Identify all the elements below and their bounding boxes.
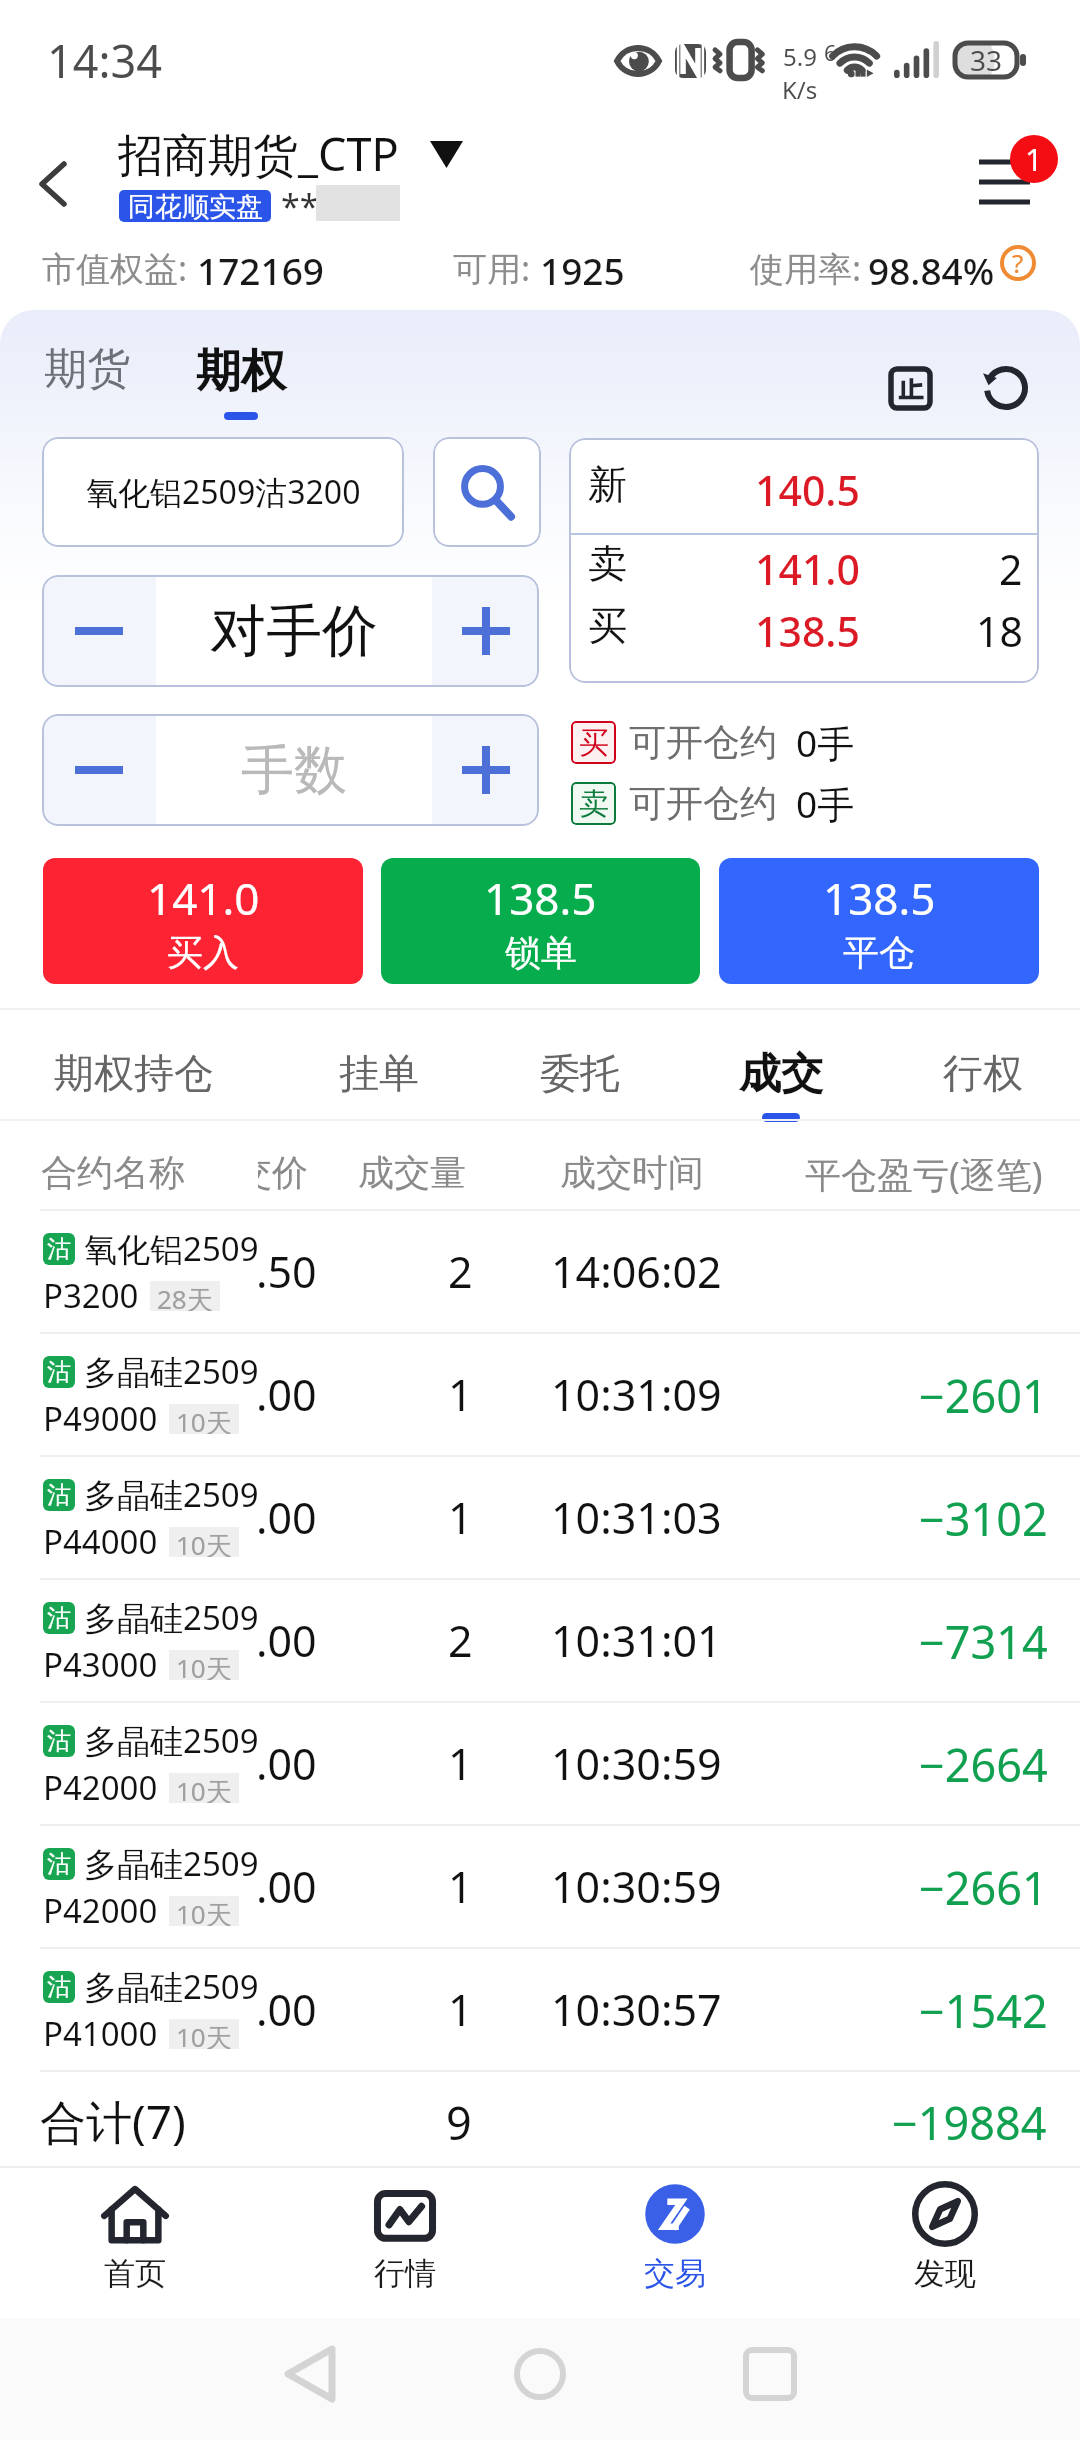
- staticText: 0手: [796, 717, 855, 768]
- staticText: 10:31:03: [551, 1488, 722, 1547]
- staticText: 10:30:57: [551, 1980, 722, 2039]
- staticText: .50: [256, 1242, 317, 1301]
- staticText: 140.5: [755, 462, 860, 518]
- staticText: 沽: [47, 1972, 71, 2002]
- button[interactable]: 期货: [44, 342, 130, 396]
- button[interactable]: Decrease: [42, 714, 156, 826]
- staticText: 沽: [47, 1357, 71, 1387]
- staticText: .00: [256, 1365, 317, 1424]
- button[interactable]: 成交: [719, 1022, 843, 1132]
- staticText: −19884: [892, 2092, 1047, 2153]
- button[interactable]: 138.5: [719, 858, 1039, 984]
- button[interactable]: 141.0: [43, 858, 363, 984]
- button[interactable]: Search: [433, 437, 541, 547]
- staticText: .00: [256, 1734, 317, 1793]
- staticText: 98.84%: [868, 245, 995, 291]
- button[interactable]: 138.5: [381, 858, 700, 984]
- staticText: 1: [448, 1980, 473, 2039]
- staticText: 挂单: [339, 1048, 419, 1098]
- staticText: .00: [256, 1857, 317, 1916]
- staticText: 138.5: [484, 868, 597, 928]
- staticText: .00: [256, 1980, 317, 2039]
- button[interactable]: 期权持仓: [34, 1022, 234, 1132]
- staticText: 10:31:01: [551, 1611, 722, 1670]
- staticText: 1: [448, 1365, 473, 1424]
- button[interactable]: Recents: [730, 2334, 810, 2414]
- button[interactable]: .00: [0, 1334, 1080, 1455]
- staticText: 9: [446, 2092, 472, 2153]
- staticText: .00: [256, 1611, 317, 1670]
- staticText: 1925: [540, 245, 625, 291]
- staticText: 1: [448, 1857, 473, 1916]
- staticText: 138.5: [823, 868, 936, 928]
- staticText: −2661: [919, 1857, 1048, 1918]
- button[interactable]: 手数: [156, 714, 432, 826]
- button[interactable]: Back: [270, 2334, 350, 2414]
- button[interactable]: Menu: [960, 126, 1070, 226]
- button[interactable]: 挂单: [319, 1022, 439, 1132]
- staticText: 卖: [588, 539, 627, 588]
- staticText: 多晶硅2509: [84, 1841, 259, 1886]
- staticText: 沽: [47, 1726, 71, 1756]
- staticText: 10:31:09: [551, 1365, 722, 1424]
- button[interactable]: Increase: [432, 714, 539, 826]
- button[interactable]: Refresh: [968, 350, 1044, 426]
- button[interactable]: 交易: [585, 2168, 765, 2318]
- button[interactable]: 行权: [923, 1022, 1043, 1132]
- button[interactable]: .00: [0, 1826, 1080, 1947]
- staticText: 买: [588, 601, 627, 650]
- staticText: 行权: [943, 1048, 1023, 1098]
- staticText: 2: [448, 1611, 473, 1670]
- staticText: 沽: [47, 1849, 71, 1879]
- button[interactable]: .50: [0, 1211, 1080, 1332]
- staticText: −1542: [919, 1980, 1048, 2041]
- staticText: 多晶硅2509: [84, 1349, 259, 1394]
- staticText: 可用:: [453, 245, 531, 291]
- staticText: 发现: [914, 2254, 976, 2293]
- button[interactable]: 发现: [855, 2168, 1035, 2318]
- button[interactable]: 对手价: [156, 575, 432, 687]
- staticText: 买: [579, 724, 609, 762]
- button[interactable]: .00: [0, 1457, 1080, 1578]
- button[interactable]: Home: [500, 2334, 580, 2414]
- button[interactable]: .00: [0, 1703, 1080, 1824]
- staticText: 行情: [374, 2254, 436, 2293]
- staticText: P42000: [43, 1888, 158, 1933]
- button[interactable]: 氧化铝2509沽3200: [42, 437, 404, 547]
- button[interactable]: 首页: [45, 2168, 225, 2318]
- staticText: −7314: [919, 1611, 1048, 1672]
- staticText: 2: [448, 1242, 473, 1301]
- staticText: 10天: [176, 2019, 232, 2049]
- staticText: 沽: [47, 1480, 71, 1510]
- staticText: 5.9: [783, 40, 817, 73]
- staticText: 手数: [241, 737, 347, 804]
- button[interactable]: Help: [1000, 245, 1036, 281]
- staticText: 氧化铝2509: [84, 1226, 259, 1271]
- button[interactable]: 行情: [315, 2168, 495, 2318]
- button[interactable]: .00: [0, 1580, 1080, 1701]
- staticText: 成交量: [358, 1150, 466, 1195]
- button[interactable]: Decrease: [42, 575, 156, 687]
- staticText: 多晶硅2509: [84, 1964, 259, 2009]
- button[interactable]: 期权: [196, 340, 286, 420]
- button[interactable]: 委托: [520, 1022, 640, 1132]
- staticText: 1: [1025, 138, 1043, 180]
- button[interactable]: Stop order: [874, 352, 946, 424]
- staticText: 6: [824, 37, 837, 67]
- staticText: P43000: [43, 1642, 158, 1687]
- button[interactable]: Increase: [432, 575, 539, 687]
- staticText: ***: [281, 183, 338, 229]
- button[interactable]: .00: [0, 1949, 1080, 2070]
- staticText: 沽: [47, 1234, 71, 1264]
- staticText: 沽: [47, 1603, 71, 1633]
- staticText: 141.0: [147, 868, 260, 928]
- button[interactable]: Back: [14, 144, 94, 224]
- staticText: 新: [588, 460, 627, 509]
- staticText: P3200: [43, 1273, 139, 1318]
- staticText: K/s: [782, 73, 818, 106]
- staticText: 成交: [739, 1048, 823, 1101]
- staticText: 平仓: [843, 930, 915, 975]
- staticText: 2: [999, 541, 1023, 597]
- staticText: 10天: [176, 1896, 232, 1926]
- staticText: .00: [256, 1488, 317, 1547]
